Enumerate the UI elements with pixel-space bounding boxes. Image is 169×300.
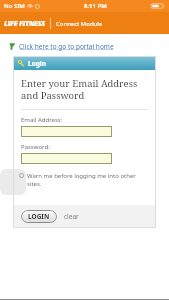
button[interactable] (21, 153, 112, 164)
staticText: Email Address: (21, 116, 63, 124)
staticText: 8:11 PM (84, 2, 107, 10)
staticText: Click here to go to portal home (19, 42, 114, 51)
button[interactable]: Click here to go to portal home (9, 42, 169, 51)
button[interactable] (21, 126, 112, 137)
staticText: Password: (21, 143, 50, 151)
staticText: LOGIN (28, 212, 50, 221)
staticText: Login (28, 59, 46, 68)
staticText: No SIM (4, 2, 25, 10)
button[interactable]: LOGIN (21, 210, 57, 223)
button[interactable]: Warn me before logging me into other sit… (19, 172, 148, 188)
staticText: clear (64, 212, 79, 221)
staticText: Warn me before logging me into other sit… (27, 172, 148, 188)
staticText: LIFE FITNESS (4, 19, 45, 29)
button[interactable]: clear (64, 212, 79, 221)
staticText: Connect Module (56, 20, 103, 28)
staticText: Enter your Email Address and Password (21, 77, 148, 102)
